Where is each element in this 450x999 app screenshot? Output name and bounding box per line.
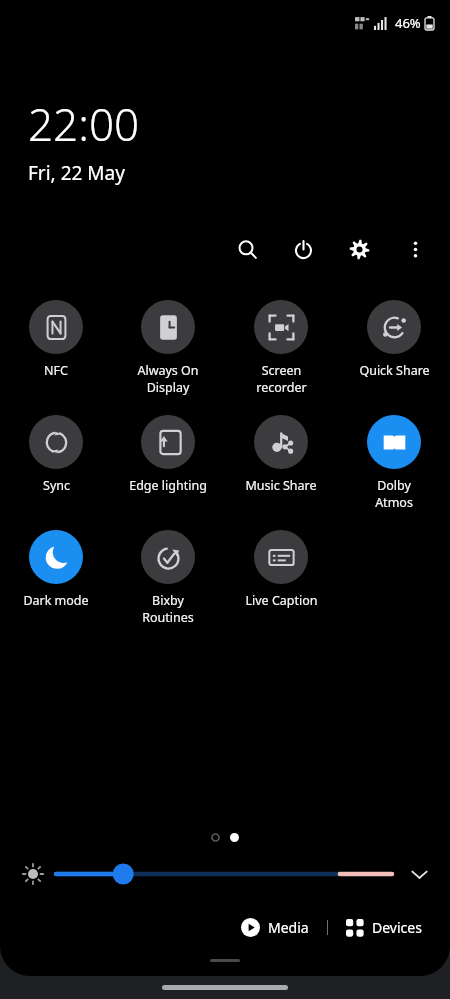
button[interactable]: Live Caption [231, 528, 331, 611]
button[interactable]: Media [235, 914, 315, 941]
button[interactable]: Settings [342, 232, 376, 266]
staticText: Devices [372, 918, 422, 937]
button[interactable]: Search [230, 232, 264, 266]
button[interactable]: Collapse panel [210, 959, 240, 962]
button[interactable] [56, 859, 392, 889]
button[interactable]: Dark mode [6, 528, 106, 611]
staticText: Fri, 22 May [28, 160, 125, 186]
staticText: Bixby Routines [142, 592, 194, 625]
button[interactable]: Always On Display [118, 298, 218, 397]
staticText: Screen recorder [256, 362, 307, 395]
button[interactable]: Screen recorder [231, 298, 331, 397]
button[interactable]: More options [398, 232, 432, 266]
button[interactable]: Dolby Atmos [344, 413, 444, 512]
button[interactable]: Sync [6, 413, 106, 496]
staticText: Sync [43, 477, 70, 494]
button[interactable]: Power [286, 232, 320, 266]
staticText: Edge lighting [129, 477, 207, 494]
button[interactable]: Expand brightness settings [402, 857, 436, 891]
button[interactable]: Bixby Routines [118, 528, 218, 627]
staticText: NFC [44, 362, 68, 379]
staticText: Always On Display [137, 362, 199, 395]
button[interactable]: Edge lighting [118, 413, 218, 496]
staticText: Dark mode [23, 592, 89, 609]
button[interactable]: Devices [340, 914, 428, 941]
staticText: Dolby Atmos [375, 477, 413, 510]
staticText: Music Share [245, 477, 317, 494]
staticText: Media [268, 918, 309, 937]
staticText: 46% [395, 14, 421, 32]
staticText: Live Caption [245, 592, 318, 609]
button[interactable]: NFC [6, 298, 106, 381]
staticText: 22:00 [28, 94, 140, 154]
staticText: Quick Share [359, 362, 430, 379]
button[interactable]: Music Share [231, 413, 331, 496]
button[interactable]: Quick Share [344, 298, 444, 381]
